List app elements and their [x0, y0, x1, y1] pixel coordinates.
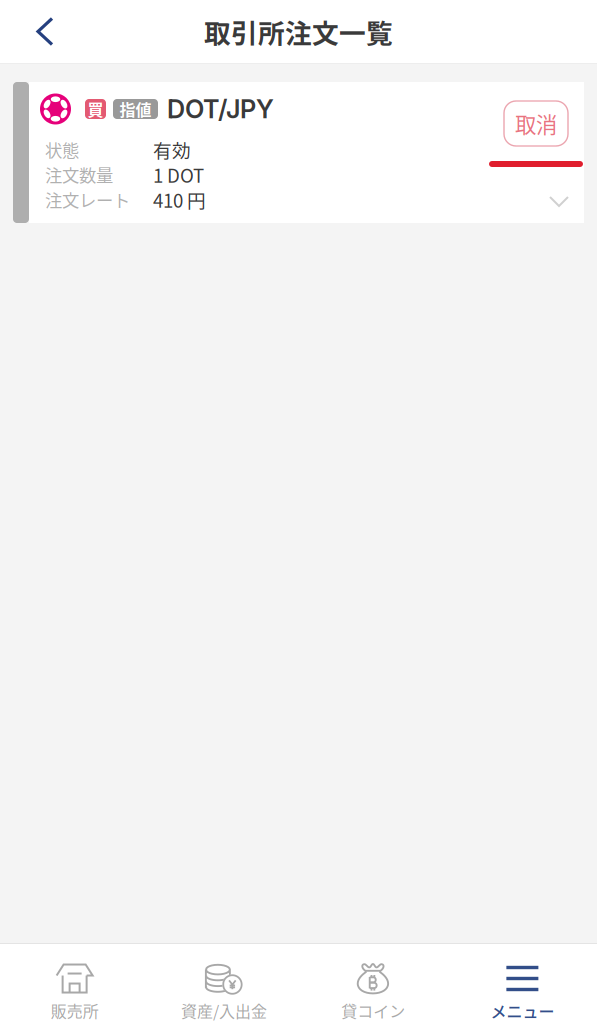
- staticText: 取引所注文一覧: [204, 12, 393, 51]
- staticText: 1 DOT: [153, 161, 204, 188]
- staticText: 有効: [153, 136, 191, 163]
- staticText: 貸コイン: [341, 999, 405, 1022]
- staticText: 販売所: [51, 999, 99, 1022]
- staticText: 取消: [515, 108, 557, 139]
- staticText: メニュー: [490, 999, 554, 1022]
- staticText: 注文レート: [45, 187, 130, 212]
- staticText: 資産/入出金: [181, 999, 267, 1022]
- button[interactable]: 取消: [504, 101, 568, 146]
- staticText: 410 円: [153, 186, 206, 213]
- staticText: 買: [87, 97, 103, 121]
- button[interactable]: メニュー: [448, 944, 597, 1024]
- staticText: 状態: [45, 137, 79, 162]
- button[interactable]: 貸コイン: [298, 944, 448, 1024]
- staticText: 指値: [119, 97, 151, 121]
- staticText: 注文数量: [45, 162, 113, 187]
- button[interactable]: 販売所: [0, 944, 149, 1024]
- staticText: DOT/JPY: [167, 94, 274, 124]
- button[interactable]: 資産/入出金: [149, 944, 298, 1024]
- button[interactable]: Back: [0, 0, 90, 63]
